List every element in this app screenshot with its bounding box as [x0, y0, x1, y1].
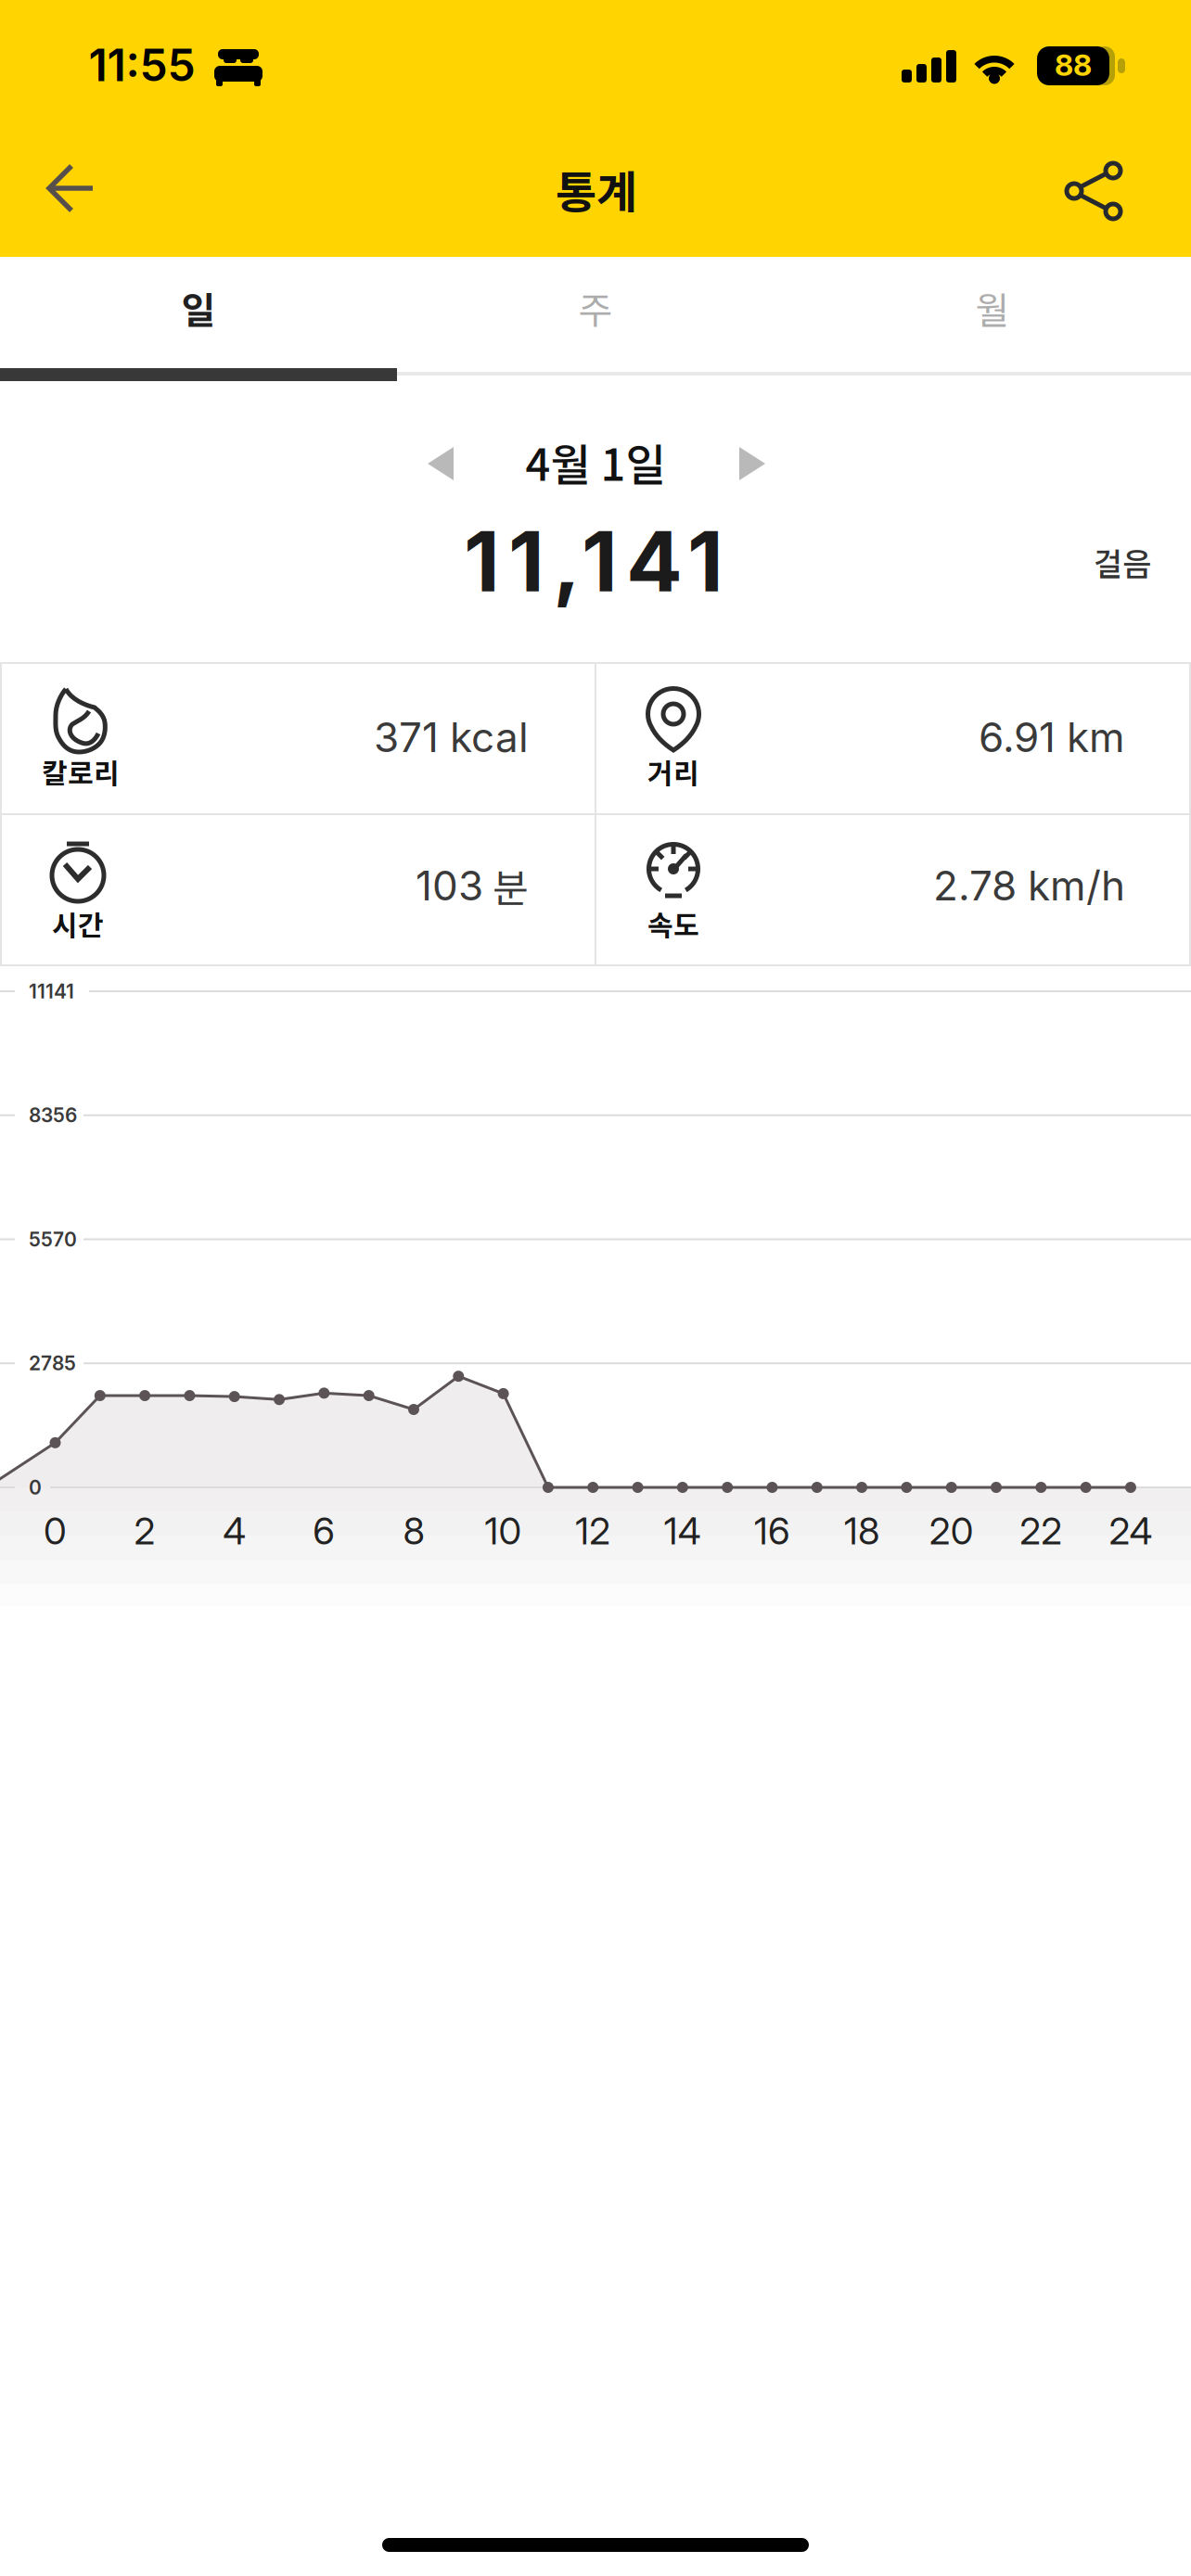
staticText: 12: [575, 1509, 611, 1553]
button[interactable]: Back: [3, 151, 133, 225]
staticText: 칼로리: [42, 751, 120, 792]
button[interactable]: Share: [1066, 162, 1123, 220]
staticText: 2.78 km/h: [933, 861, 1125, 910]
staticText: 분: [493, 857, 529, 914]
staticText: 속도: [647, 903, 699, 944]
staticText: 주: [578, 281, 613, 335]
button[interactable]: Previous day: [403, 427, 478, 501]
button[interactable]: 일: [0, 252, 397, 363]
staticText: 20: [929, 1509, 974, 1553]
staticText: 8: [403, 1509, 424, 1553]
staticText: 4: [223, 1509, 246, 1553]
staticText: 0: [29, 1476, 42, 1499]
staticText: 4월 1일: [525, 430, 666, 493]
staticText: 18: [844, 1509, 879, 1553]
button[interactable]: Next day: [715, 427, 789, 501]
staticText: 103: [416, 861, 483, 910]
staticText: 24: [1109, 1509, 1152, 1553]
button[interactable]: 월: [794, 252, 1191, 363]
staticText: 14: [664, 1509, 701, 1553]
staticText: 11:55: [89, 38, 195, 92]
button[interactable]: 주: [397, 252, 794, 363]
staticText: 월: [975, 281, 1010, 335]
staticText: 걸음: [1094, 539, 1151, 585]
staticText: 6.91 km: [979, 713, 1125, 762]
staticText: 시간: [52, 903, 104, 944]
staticText: 22: [1020, 1509, 1062, 1553]
staticText: 6: [313, 1509, 335, 1553]
staticText: 2: [134, 1509, 155, 1553]
staticText: 0: [44, 1509, 67, 1553]
staticText: 16: [754, 1509, 790, 1553]
staticText: 통계: [556, 157, 637, 221]
staticText: 88: [1055, 47, 1092, 83]
staticText: 일: [181, 281, 216, 335]
staticText: 11141: [29, 979, 74, 1003]
staticText: 371 kcal: [374, 713, 529, 762]
staticText: 11,141: [464, 511, 724, 612]
staticText: 5570: [29, 1228, 77, 1251]
staticText: 2785: [29, 1352, 76, 1375]
staticText: 거리: [647, 751, 699, 792]
staticText: 8356: [29, 1103, 77, 1127]
staticText: 10: [485, 1509, 522, 1553]
